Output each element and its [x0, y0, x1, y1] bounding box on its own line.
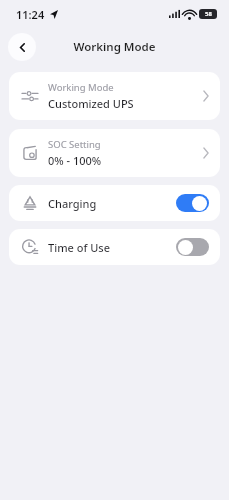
button[interactable]: Time of Use off — [176, 238, 209, 256]
staticText: Working Mode — [48, 81, 114, 94]
button[interactable]: Back — [8, 33, 36, 61]
button[interactable]: SOC Setting — [9, 129, 220, 177]
staticText: Customized UPS — [48, 96, 134, 111]
staticText: Time of Use — [48, 240, 176, 255]
button[interactable]: Charging on — [176, 194, 209, 212]
button[interactable]: Charging — [9, 185, 220, 221]
staticText: 58 — [205, 10, 212, 18]
button[interactable]: Time of Use — [9, 229, 220, 265]
staticText: SOC Setting — [48, 138, 101, 151]
staticText: 11:24 — [16, 7, 45, 22]
staticText: Working Mode — [73, 39, 156, 55]
staticText: 0% - 100% — [48, 153, 102, 168]
button[interactable]: Working Mode — [9, 72, 220, 120]
staticText: Charging — [48, 196, 176, 211]
